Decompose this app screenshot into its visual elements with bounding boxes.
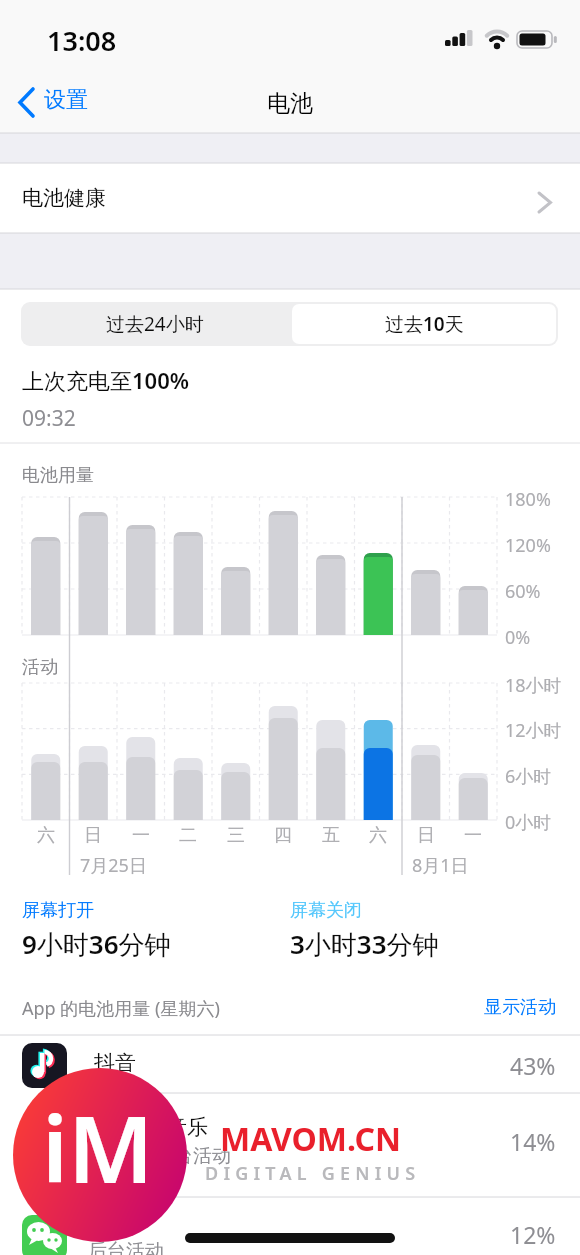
staticText: 60% <box>505 579 541 604</box>
staticText: 7月25日 <box>80 853 147 878</box>
staticText: 日 <box>417 824 435 847</box>
staticText: 日 <box>84 824 102 847</box>
staticText: 音乐 <box>166 1114 208 1140</box>
staticText: 13:08 <box>47 22 117 59</box>
staticText: 18小时 <box>505 673 562 698</box>
staticText: MAVOM.CN <box>220 1117 401 1161</box>
staticText: 3小时33分钟 <box>290 926 439 962</box>
staticText: 五 <box>322 824 340 847</box>
staticText: 6小时 <box>505 764 552 789</box>
staticText: 12小时 <box>505 718 562 743</box>
button[interactable]: 电池健康 <box>0 163 580 233</box>
staticText: 0小时 <box>505 810 552 835</box>
staticText: 三 <box>227 824 245 847</box>
staticText: 180% <box>505 487 551 512</box>
staticText: 四 <box>274 824 292 847</box>
staticText: 后台活动 <box>155 1144 231 1168</box>
button[interactable]: 设置 <box>14 84 124 122</box>
staticText: 过去10天 <box>385 311 464 337</box>
button[interactable]: 过去10天 <box>292 304 556 344</box>
staticText: 120% <box>505 533 551 558</box>
staticText: 二 <box>179 824 197 847</box>
staticText: 电池健康 <box>22 185 106 211</box>
staticText: App 的电池用量 (星期六) <box>22 996 220 1021</box>
button[interactable]: 显示活动 <box>420 992 556 1022</box>
staticText: 屏幕关闭 <box>290 899 362 922</box>
staticText: 六 <box>37 824 55 847</box>
button[interactable]: 过去24小时 <box>21 302 289 346</box>
staticText: 电池用量 <box>22 464 94 487</box>
staticText: 设置 <box>44 86 88 114</box>
staticText: 显示活动 <box>484 996 556 1019</box>
button[interactable]: 音乐 <box>0 1093 580 1197</box>
staticText: 0% <box>505 625 531 650</box>
staticText: 抖音 <box>94 1050 136 1076</box>
staticText: 43% <box>510 1050 556 1080</box>
staticText: 屏幕打开 <box>22 899 94 922</box>
staticText: 一 <box>132 824 150 847</box>
staticText: 一 <box>464 824 482 847</box>
staticText: 14% <box>510 1126 556 1156</box>
button[interactable]: 微信 <box>0 1197 580 1255</box>
staticText: 后台活动 <box>88 1239 164 1255</box>
staticText: 微信 <box>94 1205 136 1231</box>
staticText: 8月1日 <box>412 853 469 878</box>
button[interactable]: 抖音 <box>0 1036 580 1093</box>
staticText: 过去24小时 <box>106 311 204 337</box>
staticText: 活动 <box>22 656 58 679</box>
staticText: 09:32 <box>22 404 76 433</box>
staticText: 9小时36分钟 <box>22 926 171 962</box>
staticText: 12% <box>510 1219 556 1249</box>
staticText: 上次充电至100% <box>22 365 190 395</box>
staticText: 六 <box>369 824 387 847</box>
staticText: 电池 <box>267 89 313 118</box>
staticText: DIGITAL GENIUS <box>205 1161 421 1186</box>
staticText: iM <box>42 1085 154 1210</box>
